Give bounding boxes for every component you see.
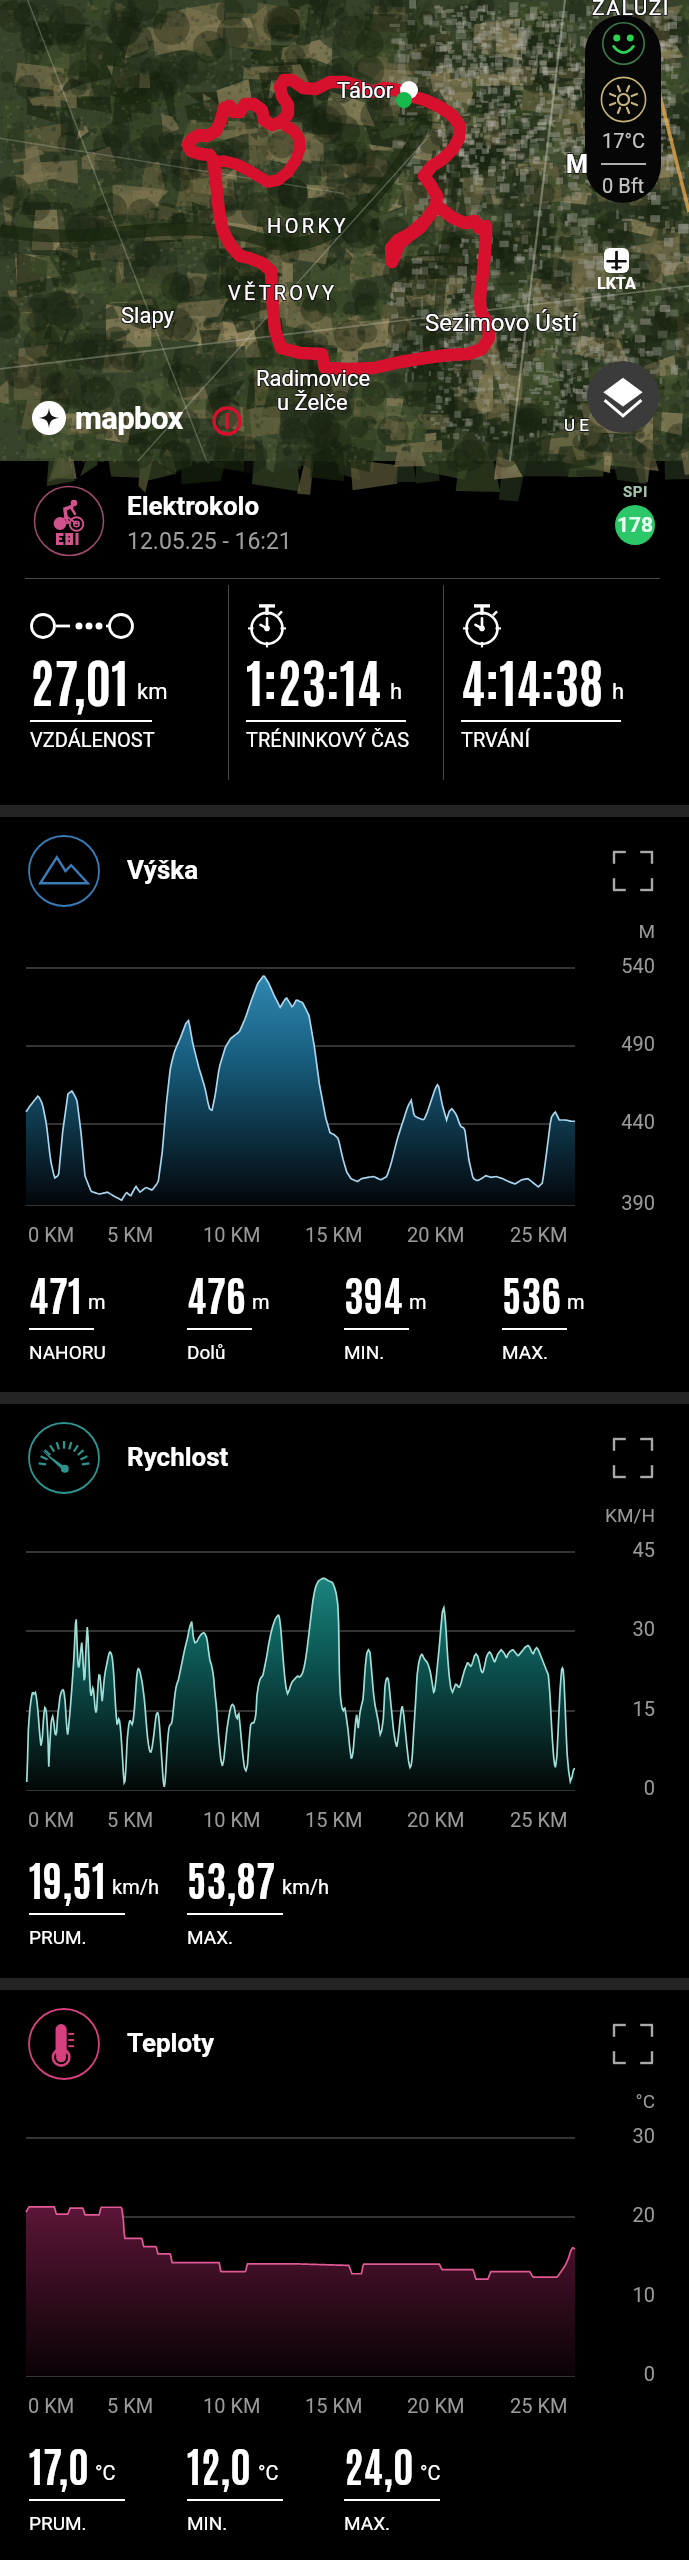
button[interactable]: 1:23:14	[246, 611, 456, 776]
staticText: Slapy	[122, 302, 176, 328]
staticText: 4:14:38	[461, 646, 604, 713]
staticText: 10	[555, 2283, 655, 2306]
staticText: TRVÁNÍ	[461, 728, 530, 751]
staticText: °C	[258, 2461, 279, 2484]
staticText: Tábor	[338, 79, 395, 105]
button[interactable]: 394	[344, 1265, 544, 1365]
staticText: Slapy	[120, 302, 174, 328]
staticText: U E	[565, 414, 590, 434]
staticText: 440	[555, 1110, 655, 1133]
staticText: 10 KM	[203, 2394, 261, 2417]
button[interactable]: Map layers	[587, 361, 659, 433]
staticText: 5 KM	[107, 1223, 154, 1246]
button[interactable]: 24,0	[344, 2436, 544, 2536]
button[interactable]: 4:14:38	[461, 611, 671, 776]
staticText: M	[555, 920, 655, 942]
staticText: 17°C	[602, 129, 645, 152]
staticText: km/h	[282, 1875, 329, 1898]
staticText: 17,0	[29, 2436, 89, 2490]
button[interactable]: 53,87	[187, 1850, 387, 1950]
staticText: 24,0	[344, 2436, 414, 2490]
button[interactable]: SPI score 178	[607, 483, 663, 545]
staticText: ZÁLUŽÍ	[591, 0, 670, 22]
staticText: M	[567, 149, 589, 178]
staticText: Radimovice	[256, 366, 371, 392]
staticText: HORKY	[267, 214, 349, 237]
staticText: °C	[555, 2090, 655, 2112]
staticText: 536	[502, 1265, 561, 1319]
staticText: Radimovice	[257, 367, 372, 393]
staticText: U E	[565, 416, 590, 436]
staticText: u Želče	[276, 391, 347, 417]
staticText: TRÉNINKOVÝ ČAS	[246, 728, 410, 751]
staticText: Tábor	[336, 79, 393, 105]
staticText: Tábor	[338, 77, 395, 103]
staticText: u Želče	[276, 389, 347, 415]
button[interactable]: 471	[29, 1265, 229, 1365]
staticText: 30	[555, 1617, 655, 1640]
button[interactable]: Weather conditions	[585, 15, 661, 203]
staticText: Sezimovo Ústí	[425, 309, 578, 337]
staticText: Radimovice	[255, 367, 370, 393]
staticText: 27,01	[30, 646, 129, 713]
staticText: M	[566, 150, 588, 179]
staticText: km	[137, 679, 168, 705]
staticText: MAX.	[502, 1341, 549, 1363]
staticText: 178	[617, 513, 654, 538]
staticText: M	[565, 151, 587, 180]
staticText: 390	[555, 1191, 655, 1214]
staticText: Slapy	[121, 303, 175, 329]
staticText: 5 KM	[107, 2394, 154, 2417]
staticText: 490	[555, 1032, 655, 1055]
staticText: Radimovice	[255, 365, 370, 391]
staticText: VĚTROVY	[229, 280, 339, 303]
staticText: 5 KM	[107, 1808, 154, 1831]
staticText: 15 KM	[305, 1223, 363, 1246]
staticText: Slapy	[120, 304, 174, 330]
staticText: MIN.	[187, 2512, 228, 2534]
staticText: Sezimovo Ústí	[424, 310, 577, 338]
staticText: h	[612, 679, 625, 705]
staticText: ZÁLUŽÍ	[591, 0, 670, 20]
staticText: Elektrokolo	[127, 491, 260, 521]
staticText: MAX.	[187, 1926, 234, 1948]
button[interactable]: Fullscreen chart	[613, 851, 653, 891]
staticText: HORKY	[268, 215, 350, 238]
staticText: 12,0	[187, 2436, 252, 2490]
button[interactable]: 476	[187, 1265, 387, 1365]
staticText: 476	[187, 1265, 246, 1319]
button[interactable]: Fullscreen chart	[613, 1438, 653, 1478]
staticText: 0 Bft	[602, 174, 645, 197]
staticText: VĚTROVY	[227, 280, 337, 303]
staticText: HORKY	[268, 213, 350, 236]
staticText: NAHORU	[29, 1341, 106, 1363]
staticText: h	[390, 679, 403, 705]
staticText: VZDÁLENOST	[30, 728, 155, 751]
staticText: Tábor	[337, 78, 394, 104]
staticText: HORKY	[266, 213, 348, 236]
button[interactable]: 27,01	[30, 611, 240, 776]
staticText: m	[567, 1290, 585, 1313]
staticText: LKTA	[597, 274, 636, 293]
staticText: 471	[29, 1265, 82, 1319]
staticText: 20 KM	[407, 2394, 465, 2417]
staticText: Teploty	[127, 2028, 215, 2058]
staticText: Tábor	[336, 77, 393, 103]
staticText: 0 KM	[28, 1808, 75, 1831]
button[interactable]: Fullscreen chart	[613, 2024, 653, 2064]
button[interactable]: 17,0	[29, 2436, 229, 2536]
button[interactable]: 536	[502, 1265, 689, 1365]
staticText: U E	[564, 415, 589, 435]
staticText: 0 KM	[28, 2394, 75, 2417]
staticText: Sezimovo Ústí	[426, 310, 579, 338]
button[interactable]: 19,51	[29, 1850, 229, 1950]
staticText: 394	[344, 1265, 403, 1319]
staticText: M	[565, 149, 587, 178]
button[interactable]: 12,0	[187, 2436, 387, 2536]
staticText: 540	[555, 954, 655, 977]
staticText: 0	[555, 2362, 655, 2385]
staticText: 15 KM	[305, 1808, 363, 1831]
staticText: KM/H	[555, 1504, 655, 1526]
staticText: ZÁLUŽÍ	[592, 0, 671, 21]
staticText: 53,87	[187, 1850, 276, 1904]
